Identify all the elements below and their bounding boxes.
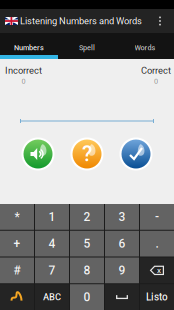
staticText: Spell [79,43,95,52]
staticText: Words [134,43,155,52]
staticText: . [155,237,158,251]
staticText: - [155,210,159,224]
staticText: 9 [118,263,125,277]
staticText: * [14,210,19,224]
staticText: x [157,266,161,275]
button[interactable]: Words [116,33,174,59]
button[interactable]: # [0,257,34,283]
button[interactable]: 6 [105,231,139,257]
button[interactable]: Switch keyboard [0,284,34,310]
staticText: 5 [83,237,90,251]
staticText: 1 [48,210,55,224]
staticText: Correct [141,65,171,76]
button[interactable]: 5 [70,231,104,257]
staticText: # [13,263,20,277]
staticText: Listo [146,291,168,303]
button[interactable]: . [140,231,174,257]
button[interactable]: - [140,204,174,230]
button[interactable]: 7 [35,257,69,283]
staticText: + [13,237,20,251]
staticText: 8 [83,263,90,277]
button[interactable]: 8 [70,257,104,283]
button[interactable]: 9 [105,257,139,283]
button[interactable]: + [0,231,34,257]
staticText: 0 [154,77,158,85]
staticText: Listening Numbers and Words [20,15,142,26]
staticText: ? [82,141,92,166]
button[interactable]: Play sound [21,137,55,171]
button[interactable]: * [0,204,34,230]
staticText: Incorrect [5,65,42,76]
button[interactable]: Delete [140,257,174,283]
button[interactable]: Spell [58,33,116,59]
button[interactable]: 1 [35,204,69,230]
button[interactable]: Check answer [119,137,153,171]
staticText: 7 [48,263,55,277]
staticText: 4 [48,237,55,251]
button[interactable]: More options [152,9,168,33]
button[interactable]: 4 [35,231,69,257]
button[interactable]: ABC [35,284,69,310]
button[interactable]: Hint [70,137,104,171]
button[interactable]: 2 [70,204,104,230]
button[interactable]: Listo [140,284,174,310]
button[interactable]: 3 [105,204,139,230]
staticText: 2 [83,210,90,224]
button[interactable]: 0 [70,284,104,310]
staticText: 3 [118,210,125,224]
button[interactable]: Space [105,284,139,310]
staticText: 0 [21,77,25,85]
staticText: Numbers [14,43,44,52]
staticText: 6 [118,237,125,251]
button[interactable]: Numbers [0,33,58,59]
staticText: 0 [83,290,90,304]
staticText: ABC [43,292,61,303]
